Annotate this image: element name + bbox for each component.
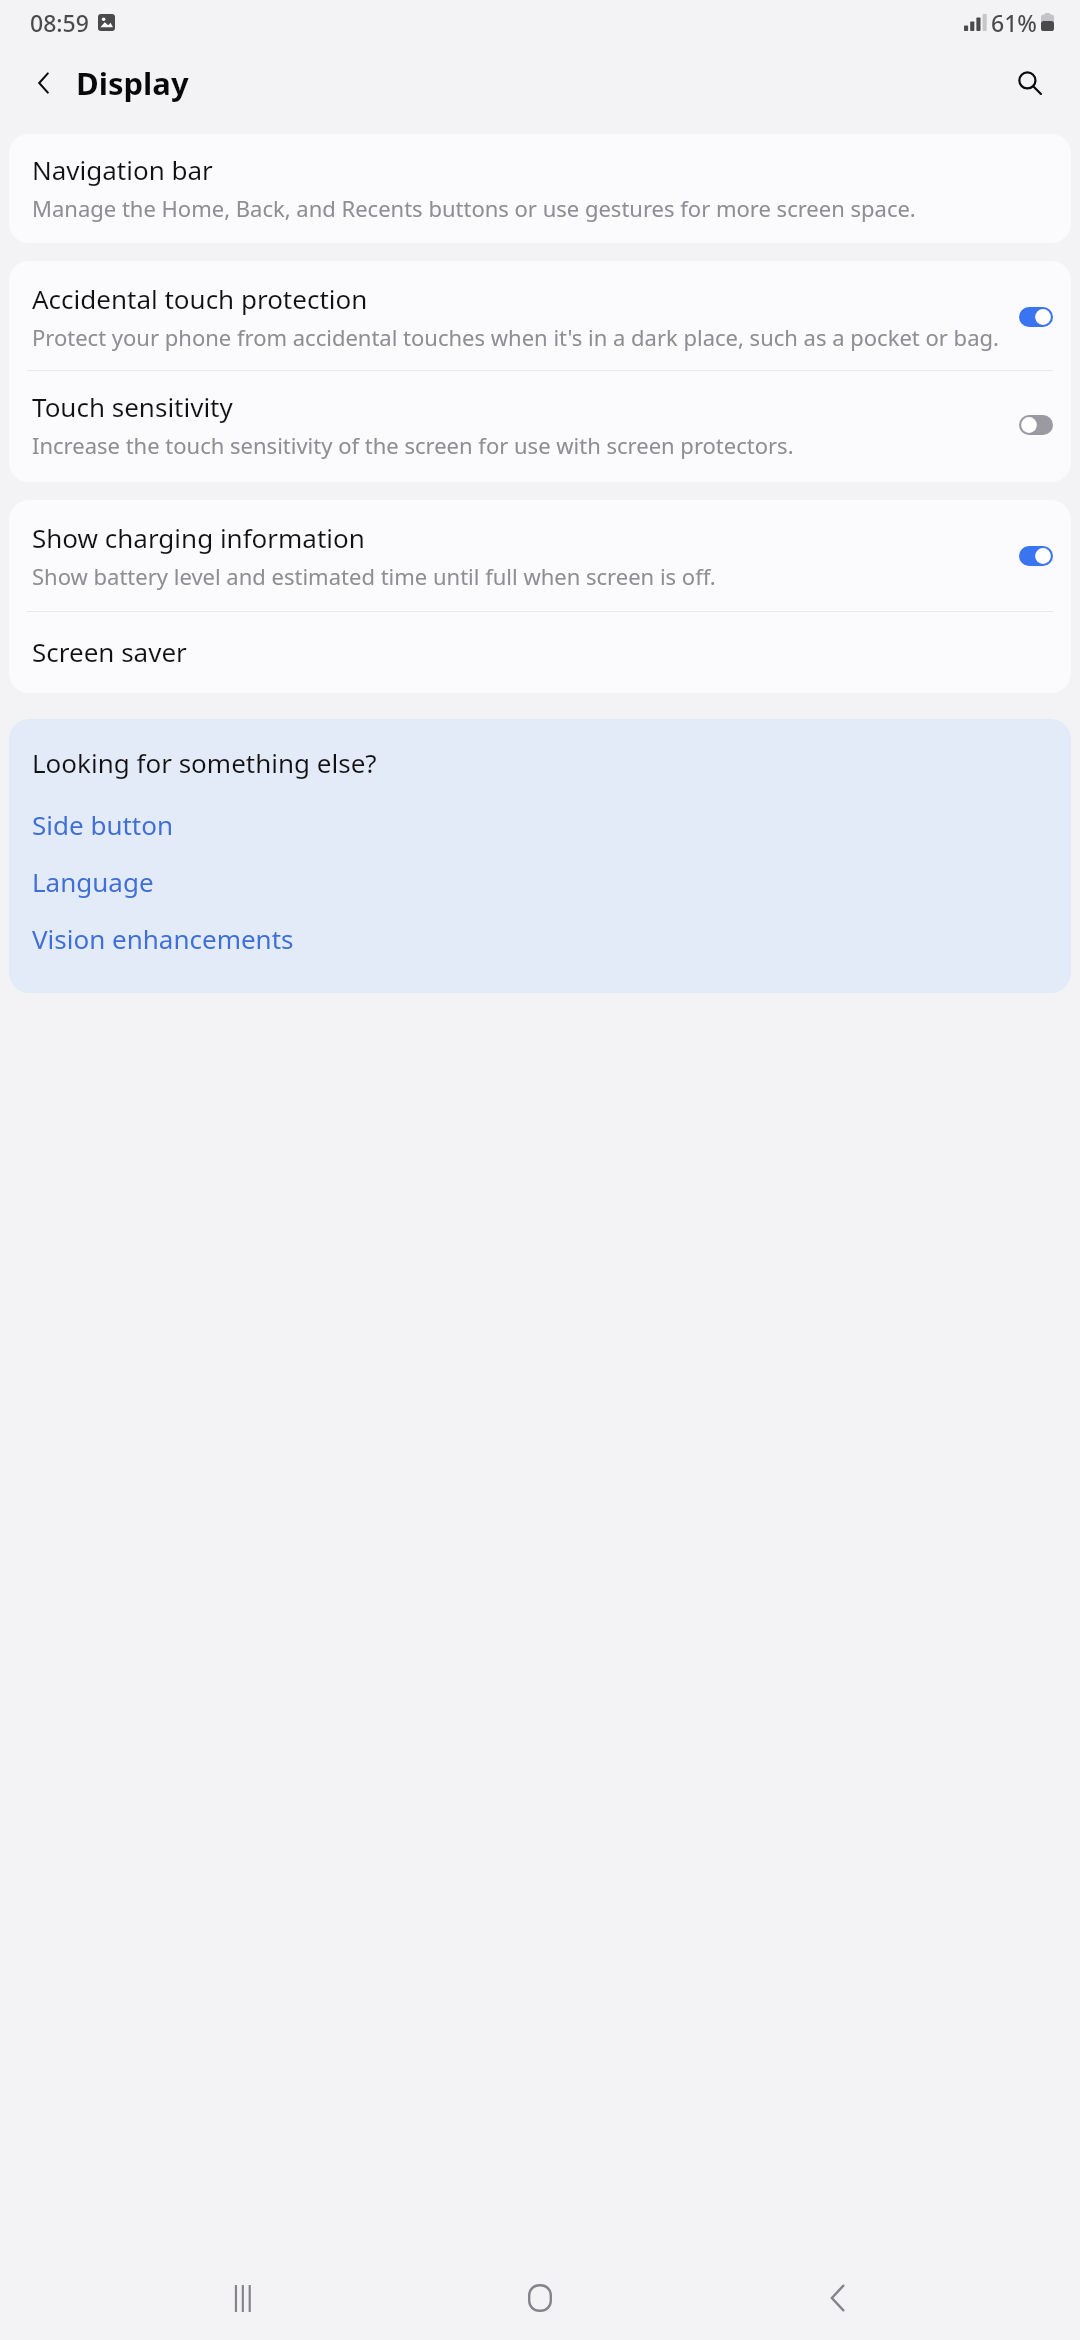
staticText: Navigation bar <box>32 152 213 187</box>
staticText: 08:59 <box>30 7 89 38</box>
button[interactable]: Home <box>485 2263 595 2333</box>
button[interactable]: Back <box>20 59 68 107</box>
button[interactable]: Recent apps <box>188 2263 298 2333</box>
button[interactable]: Touch sensitivity <box>9 371 1071 482</box>
button[interactable]: Accidental touch protection <box>9 261 1071 370</box>
staticText: Show charging information <box>32 520 365 555</box>
button[interactable]: Off <box>1019 415 1053 435</box>
staticText: Touch sensitivity <box>32 389 233 424</box>
button[interactable]: Side button <box>32 796 1048 853</box>
button[interactable]: Screen saver <box>9 612 1071 693</box>
staticText: Protect your phone from accidental touch… <box>32 322 999 352</box>
staticText: Side button <box>32 807 174 842</box>
button[interactable]: Show charging information <box>9 500 1071 611</box>
staticText: Language <box>32 864 154 899</box>
staticText: Display <box>76 62 189 104</box>
staticText: 61% <box>991 7 1037 38</box>
button[interactable]: On <box>1019 546 1053 566</box>
staticText: Looking for something else? <box>32 745 377 780</box>
staticText: Accidental touch protection <box>32 281 368 316</box>
staticText: Manage the Home, Back, and Recents butto… <box>32 193 916 223</box>
button[interactable]: Search <box>1006 59 1054 107</box>
button[interactable]: Back <box>783 2263 893 2333</box>
button[interactable]: On <box>1019 307 1053 327</box>
button[interactable]: Vision enhancements <box>32 910 1048 967</box>
staticText: Increase the touch sensitivity of the sc… <box>32 430 794 460</box>
button[interactable]: Language <box>32 853 1048 910</box>
button[interactable]: Navigation bar <box>9 134 1071 243</box>
staticText: Show battery level and estimated time un… <box>32 561 716 591</box>
staticText: Screen saver <box>32 634 187 669</box>
staticText: Vision enhancements <box>32 921 294 956</box>
